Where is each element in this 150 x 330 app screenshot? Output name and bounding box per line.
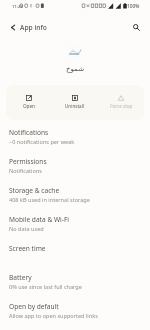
staticText: Screen time xyxy=(9,244,46,253)
button[interactable]: Battery xyxy=(0,270,150,299)
button[interactable]: Storage & cache xyxy=(0,183,150,212)
staticText: Notifications xyxy=(9,167,42,175)
button[interactable]: Open xyxy=(6,85,52,120)
staticText: Permissions xyxy=(9,157,47,166)
staticText: Mobile data & Wi-Fi xyxy=(9,215,70,224)
staticText: Allow app to open supported links xyxy=(9,312,98,320)
staticText: Force stop xyxy=(110,103,133,109)
button[interactable]: Notifications xyxy=(0,125,150,154)
staticText: Open by default xyxy=(9,302,59,311)
staticText: Battery xyxy=(9,273,32,282)
button[interactable]: Screen time xyxy=(0,241,150,270)
button[interactable]: Uninstall xyxy=(52,85,98,120)
staticText: Storage & cache xyxy=(9,186,60,195)
staticText: شموخ xyxy=(55,65,95,73)
staticText: App info xyxy=(20,23,47,32)
staticText: Notifications xyxy=(9,128,49,137)
button[interactable]: Permissions xyxy=(0,154,150,183)
button[interactable]: Mobile data & Wi-Fi xyxy=(0,212,150,241)
staticText: 408 kB used in internal storage xyxy=(9,196,90,204)
staticText: 100% xyxy=(127,3,140,10)
staticText: 11:23 xyxy=(12,4,23,10)
staticText: ~0 notifications per week xyxy=(9,138,75,146)
staticText: No data used xyxy=(9,225,44,233)
staticText: Uninstall xyxy=(65,103,85,109)
button[interactable]: Navigate up xyxy=(5,19,21,35)
button[interactable]: Open by default xyxy=(0,299,150,328)
button[interactable]: Search xyxy=(128,19,144,35)
staticText: 0% use since last full charge xyxy=(9,283,82,291)
staticText: Open xyxy=(23,103,35,109)
button[interactable]: Force stop xyxy=(98,85,144,120)
